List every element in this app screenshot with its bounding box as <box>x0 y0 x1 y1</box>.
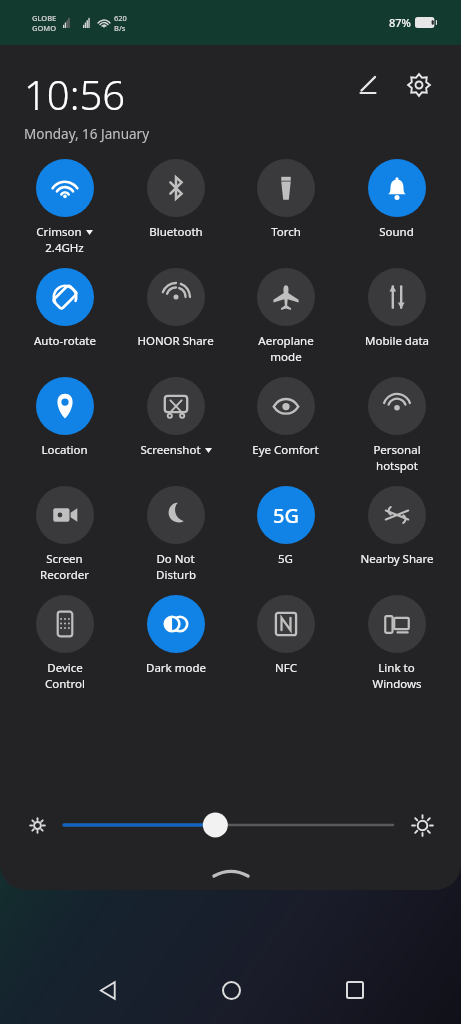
button[interactable]: Aeroplane <box>234 266 337 365</box>
staticText: Disturb <box>156 567 196 583</box>
staticText: Control <box>45 676 85 692</box>
staticText: Location <box>41 442 88 458</box>
button[interactable]: Auto-rotate <box>13 266 116 349</box>
button[interactable]: Link to <box>345 593 448 692</box>
button[interactable]: Screenshot <box>124 375 227 458</box>
button[interactable]: NFC <box>234 593 337 676</box>
button[interactable]: Torch <box>234 157 337 240</box>
staticText: mode <box>270 349 302 365</box>
staticText: 5G <box>278 551 293 567</box>
button[interactable]: Screen <box>13 484 116 583</box>
button[interactable]: Device <box>13 593 116 692</box>
button[interactable]: HONOR Share <box>124 266 227 349</box>
button[interactable]: Do Not <box>124 484 227 583</box>
staticText: Bluetooth <box>149 224 203 240</box>
staticText: Nearby Share <box>360 551 434 567</box>
button[interactable]: Dark mode <box>124 593 227 676</box>
staticText: Aeroplane <box>258 333 314 349</box>
staticText: Mobile data <box>365 333 429 349</box>
button[interactable]: Crimson <box>13 157 116 256</box>
staticText: Eye Comfort <box>252 442 319 458</box>
staticText: GOMO <box>32 23 57 33</box>
button[interactable] <box>64 810 393 840</box>
button[interactable]: Recents <box>324 959 386 1021</box>
staticText: 10:56 <box>24 67 126 121</box>
staticText: Sound <box>379 224 414 240</box>
button[interactable]: Mobile data <box>345 266 448 349</box>
staticText: Windows <box>372 676 422 692</box>
staticText: Link to <box>378 660 415 676</box>
button[interactable]: Eye Comfort <box>234 375 337 458</box>
staticText: Crimson <box>36 224 82 240</box>
button[interactable]: Sound <box>345 157 448 240</box>
button[interactable]: Edit <box>347 65 387 105</box>
staticText: Torch <box>271 224 301 240</box>
staticText: Personal <box>373 442 421 458</box>
button[interactable]: Settings <box>399 65 439 105</box>
staticText: Device <box>47 660 83 676</box>
staticText: 2.4GHz <box>45 240 84 256</box>
staticText: Screen <box>46 551 83 567</box>
staticText: 5G <box>273 502 299 529</box>
button[interactable]: Back <box>76 959 138 1021</box>
staticText: 620 <box>114 13 127 23</box>
staticText: Recorder <box>40 567 89 583</box>
staticText: GLOBE <box>32 13 57 23</box>
staticText: HONOR Share <box>137 333 214 349</box>
button[interactable]: Personal <box>345 375 448 474</box>
staticText: Dark mode <box>146 660 206 676</box>
staticText: 87% <box>389 15 411 30</box>
staticText: hotspot <box>376 458 418 474</box>
button[interactable]: Location <box>13 375 116 458</box>
button[interactable]: Nearby Share <box>345 484 448 567</box>
button[interactable]: 5G <box>234 484 337 567</box>
button[interactable]: Bluetooth <box>124 157 227 240</box>
staticText: Monday, 16 January <box>24 125 150 143</box>
staticText: Screenshot <box>140 442 201 458</box>
button[interactable]: Home <box>200 959 262 1021</box>
staticText: Do Not <box>156 551 195 567</box>
staticText: B/s <box>114 23 126 33</box>
staticText: Auto-rotate <box>34 333 96 349</box>
staticText: NFC <box>275 660 297 676</box>
